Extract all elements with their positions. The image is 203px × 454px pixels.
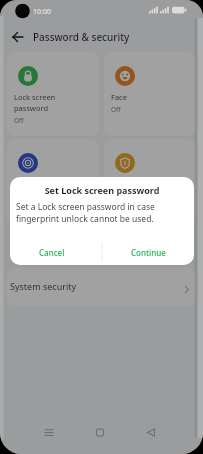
staticText: Lock screen password <box>14 92 56 113</box>
staticText: Off <box>14 116 24 125</box>
staticText: Continue <box>131 247 166 258</box>
button[interactable]: Fingerprint <box>7 139 99 223</box>
staticText: Face <box>111 92 127 102</box>
staticText: Set Lock screen password <box>10 184 194 196</box>
staticText: System security <box>10 280 77 292</box>
button[interactable]: Lock screen password <box>7 52 99 136</box>
button[interactable]: Cancel <box>10 239 102 265</box>
button[interactable]: Continue <box>102 239 194 265</box>
staticText: 10:00 <box>33 7 51 17</box>
staticText: Password & security <box>33 30 130 44</box>
staticText: Fingerprint <box>14 179 54 189</box>
button[interactable]: System security <box>7 268 196 306</box>
staticText: Off <box>111 105 121 114</box>
staticText: Off <box>111 192 121 201</box>
button[interactable]: Privacy <box>104 139 196 223</box>
staticText: Set a Lock screen password in case finge… <box>16 201 155 225</box>
button[interactable]: Face <box>104 52 196 136</box>
staticText: Cancel <box>39 247 65 258</box>
